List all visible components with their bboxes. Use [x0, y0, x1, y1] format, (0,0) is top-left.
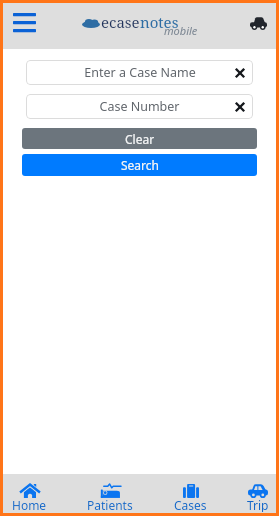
button[interactable]: Search [22, 154, 257, 176]
staticText: notes [140, 12, 179, 32]
staticText: Trip [247, 497, 269, 512]
button[interactable]: Clear [22, 128, 257, 149]
staticText: Case Number [99, 98, 180, 115]
staticText: Home [12, 497, 47, 512]
staticText: Cases [174, 497, 207, 512]
button[interactable]: Cases [174, 474, 207, 513]
button[interactable]: Home [12, 474, 47, 513]
button[interactable]: Patients [87, 474, 133, 513]
staticText: Patients [87, 497, 133, 512]
staticText: mobile [164, 23, 198, 38]
staticText: Search [121, 157, 159, 173]
button[interactable]: Clear text [232, 99, 247, 114]
button[interactable]: Open navigation menu [4, 7, 35, 43]
button[interactable]: Trip [242, 7, 274, 41]
button[interactable]: Clear text [232, 65, 247, 80]
button[interactable]: Trip [247, 474, 269, 513]
button[interactable]: Enter a Case Name [26, 60, 253, 85]
button[interactable]: Case Number [26, 94, 253, 119]
staticText: ecase [101, 12, 140, 32]
staticText: Clear [125, 131, 155, 147]
staticText: Enter a Case Name [84, 64, 196, 81]
